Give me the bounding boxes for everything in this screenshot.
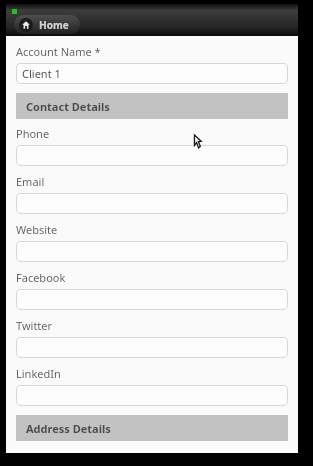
staticText: Client 1 [22,66,61,81]
staticText: Website [16,222,58,237]
button[interactable]: Text field [16,145,288,166]
button[interactable]: Text field [16,289,288,310]
staticText: Home [39,18,69,32]
button[interactable]: Text field [16,385,288,406]
staticText: Twitter [16,318,53,333]
staticText: LinkedIn [16,366,61,381]
button[interactable]: Contact Details [16,93,288,119]
staticText: Email [16,174,45,189]
staticText: Facebook [16,270,66,285]
button[interactable]: Text field [16,193,288,214]
button[interactable]: Text field [16,337,288,358]
staticText: Account Name * [16,44,101,59]
staticText: Phone [16,126,50,141]
button[interactable]: Home [14,15,80,34]
button[interactable]: Text field [16,241,288,262]
button[interactable]: Address Details [16,415,288,441]
button[interactable]: Client 1 [16,63,288,84]
staticText: Contact Details [26,99,110,114]
staticText: Address Details [26,421,111,436]
other: Home [19,18,33,32]
